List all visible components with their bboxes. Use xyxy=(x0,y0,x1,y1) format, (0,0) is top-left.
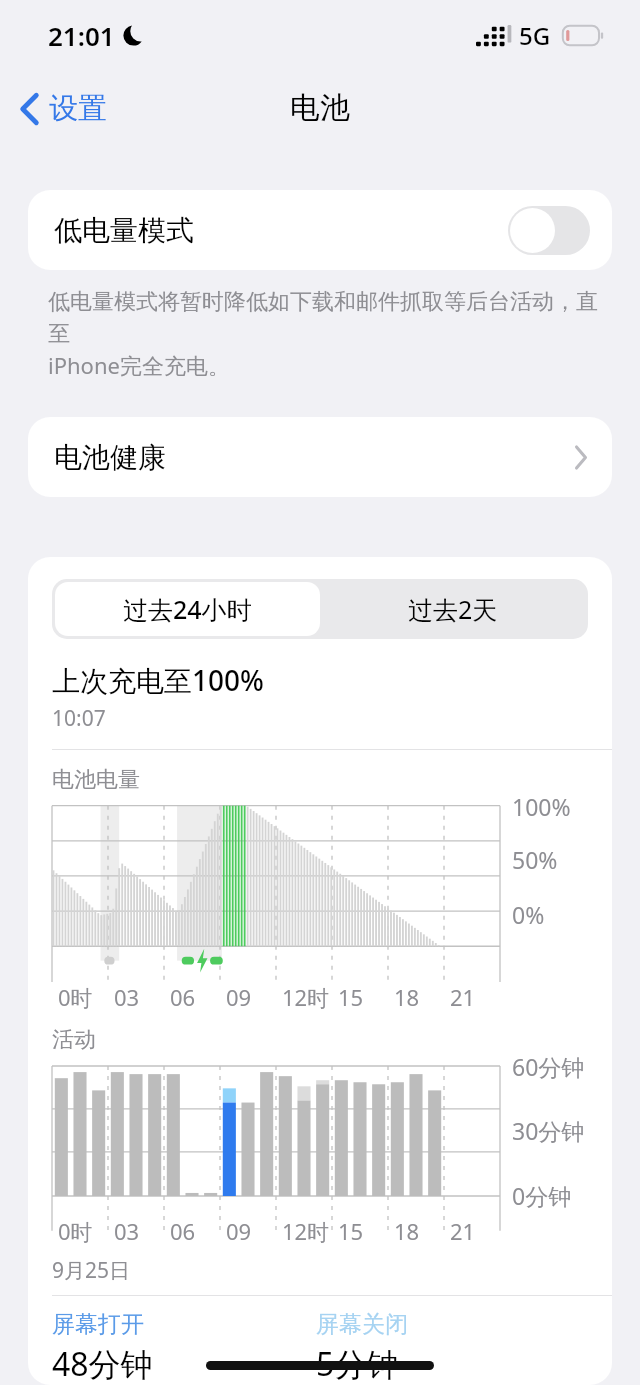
staticText: 06 xyxy=(170,1216,196,1246)
staticText: 过去24小时 xyxy=(123,592,252,626)
button[interactable]: 过去2天 xyxy=(320,582,585,636)
staticText: 电池健康 xyxy=(54,440,166,475)
button[interactable]: 低电量模式 xyxy=(28,190,612,270)
button[interactable]: 过去24小时 xyxy=(55,582,320,636)
staticText: 09 xyxy=(226,1216,252,1246)
staticText: 屏幕打开 xyxy=(52,1310,144,1339)
staticText: 10:07 xyxy=(52,704,106,733)
staticText: 15 xyxy=(338,1216,364,1246)
staticText: 15 xyxy=(338,982,364,1012)
staticText: 06 xyxy=(170,982,196,1012)
staticText: 0分钟 xyxy=(512,1180,572,1211)
staticText: 60分钟 xyxy=(512,1051,585,1082)
staticText: 上次充电至100% xyxy=(52,661,264,699)
staticText: 5分钟 xyxy=(316,1342,399,1385)
button[interactable]: Low Power Mode toggle xyxy=(508,206,590,255)
staticText: 12时 xyxy=(282,1216,330,1246)
button[interactable]: 电池健康 xyxy=(28,417,612,497)
staticText: 设置 xyxy=(49,90,107,127)
staticText: 0时 xyxy=(58,1216,93,1246)
staticText: 03 xyxy=(114,982,140,1012)
staticText: 21 xyxy=(450,1216,476,1246)
staticText: 低电量模式将暂时降低如下载和邮件抓取等后台活动，直至 iPhone完全充电。 xyxy=(48,288,612,381)
button[interactable]: 设置 xyxy=(12,82,115,135)
staticText: 48分钟 xyxy=(52,1342,153,1385)
staticText: 0时 xyxy=(58,982,93,1012)
staticText: 100% xyxy=(512,791,571,822)
staticText: 电池电量 xyxy=(52,766,140,794)
staticText: 9月25日 xyxy=(52,1256,131,1285)
staticText: 18 xyxy=(394,1216,420,1246)
staticText: 21 xyxy=(450,982,476,1012)
staticText: 21:01 xyxy=(48,18,115,53)
staticText: 活动 xyxy=(52,1026,96,1054)
staticText: 18 xyxy=(394,982,420,1012)
staticText: 0% xyxy=(512,899,545,930)
staticText: 03 xyxy=(114,1216,140,1246)
staticText: 屏幕关闭 xyxy=(316,1310,408,1339)
staticText: 过去2天 xyxy=(408,592,498,626)
staticText: 30分钟 xyxy=(512,1115,585,1146)
staticText: 低电量模式 xyxy=(54,213,194,248)
staticText: 电池 xyxy=(290,89,350,127)
staticText: 12时 xyxy=(282,982,330,1012)
staticText: 50% xyxy=(512,844,558,875)
staticText: 5G xyxy=(519,19,551,52)
staticText: 09 xyxy=(226,982,252,1012)
